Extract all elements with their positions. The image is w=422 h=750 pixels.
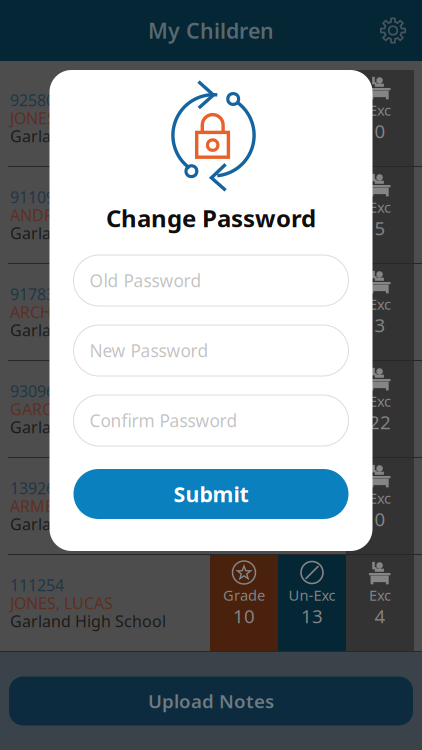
staticText: 911094	[10, 186, 64, 208]
staticText: Exc	[369, 100, 391, 120]
button[interactable]: Old Password	[73, 255, 348, 306]
staticText: 22	[369, 410, 391, 434]
staticText: Garland High School	[10, 125, 166, 147]
staticText: 930960	[10, 380, 64, 402]
staticText: Confirm Password	[89, 409, 237, 432]
staticText: Exc	[369, 585, 391, 605]
staticText: Garland High School	[10, 513, 166, 535]
staticText: 917836	[10, 283, 64, 305]
staticText: 0	[374, 119, 385, 143]
staticText: Upload Notes	[148, 689, 274, 713]
button[interactable]: Confirm Password	[73, 395, 348, 446]
button[interactable]: 917836	[0, 264, 422, 360]
staticText: Garland High School	[10, 319, 166, 341]
staticText: Grade	[223, 585, 265, 605]
button[interactable]: Settings	[380, 17, 422, 43]
staticText: 111254	[10, 574, 64, 596]
staticText: Exc	[369, 488, 391, 508]
staticText: Un-Exc	[288, 585, 335, 605]
staticText: GARCIA, SOFIA	[10, 398, 119, 420]
button[interactable]: Upload Notes	[9, 676, 413, 725]
staticText: ARMENTA, LUIS	[10, 495, 126, 517]
button[interactable]: New Password	[73, 325, 348, 376]
staticText: Submit	[173, 480, 248, 508]
button[interactable]: 139261	[0, 458, 422, 554]
staticText: Change Password	[106, 202, 316, 234]
staticText: My Children	[148, 16, 274, 45]
staticText: Exc	[369, 391, 391, 411]
staticText: ANDREWS, MIA	[10, 204, 125, 226]
button[interactable]: 111254	[0, 555, 422, 651]
staticText: 0	[374, 507, 385, 531]
staticText: JONES, LUCAS	[10, 592, 113, 614]
staticText: 3	[374, 313, 385, 337]
button[interactable]: 925806	[0, 70, 422, 166]
button[interactable]: 930960	[0, 361, 422, 457]
staticText: 13	[301, 604, 323, 628]
staticText: Garland High School	[10, 416, 166, 438]
staticText: JONES, ADAM	[10, 107, 110, 129]
staticText: 139261	[10, 477, 64, 499]
button[interactable]: 911094	[0, 167, 422, 263]
staticText: ARCHER, NOAH	[10, 301, 125, 323]
staticText: Exc	[369, 294, 391, 314]
staticText: New Password	[89, 339, 208, 362]
staticText: 10	[233, 604, 255, 628]
staticText: 925806	[10, 89, 64, 111]
button[interactable]: Submit	[73, 469, 348, 519]
staticText: 5	[374, 216, 385, 240]
staticText: Exc	[369, 197, 391, 217]
staticText: Garland High School	[10, 222, 166, 244]
staticText: Garland High School	[10, 610, 166, 632]
staticText: Old Password	[89, 269, 201, 292]
staticText: 4	[374, 604, 385, 628]
